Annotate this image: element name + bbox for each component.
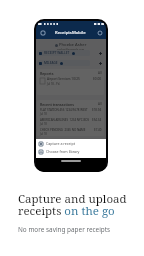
staticText: CHECK PENDING 2345 NO NAME — [40, 128, 86, 132]
staticText: All — [98, 102, 102, 106]
staticText: Capture and upload receipts on the go — [18, 191, 127, 218]
staticText: Choose from library — [46, 149, 80, 154]
button[interactable]: MILEAGE — [37, 60, 90, 66]
button[interactable]: Settings — [95, 28, 104, 37]
button[interactable]: FLAT STATION 456 1234/5678 WEST — [40, 108, 102, 117]
staticText: $7.40 — [94, 128, 102, 132]
button[interactable]: Capture a receipt — [39, 141, 103, 146]
staticText: $54.34 — [92, 118, 102, 122]
staticText: Capture a receipt — [46, 141, 75, 146]
staticText: Phoebe Asher — [59, 42, 87, 48]
staticText: RECEIPT WALLET — [44, 51, 70, 55]
staticText: $18.94 — [92, 108, 102, 112]
staticText: Recent transactions — [40, 102, 74, 107]
button[interactable]: CHECK PENDING 2345 NO NAME — [40, 128, 102, 137]
staticText: Airport Services 10/25 — [47, 77, 80, 81]
button[interactable]: Choose from library — [39, 149, 103, 154]
staticText: AMERICAN AIRLINES 1234 NYC-BOS — [40, 118, 90, 122]
button[interactable]: Add — [98, 61, 103, 66]
button[interactable]: AMERICAN AIRLINES 1234 NYC-BOS — [40, 118, 102, 127]
staticText: All — [98, 71, 102, 75]
staticText: ReceiptsMobile — [55, 30, 86, 36]
button[interactable]: Add — [98, 51, 103, 56]
staticText: $0.00 — [93, 77, 102, 81]
button[interactable]: Airport Services 10/25 — [40, 77, 102, 91]
staticText: Jul 18 — [40, 122, 47, 126]
staticText: Jul 18 - Pd. — [47, 82, 61, 86]
staticText: Jul 18 — [40, 132, 47, 136]
staticText: pasher@example.com — [57, 48, 85, 52]
staticText: Jul 18 — [40, 112, 47, 116]
staticText: Reports — [40, 71, 54, 76]
staticText: MILEAGE — [44, 61, 58, 65]
staticText: FLAT STATION 456 1234/5678 WEST — [40, 108, 88, 112]
staticText: No more saving paper receipts — [18, 225, 111, 234]
button[interactable]: Menu — [38, 28, 47, 37]
button[interactable]: RECEIPT WALLET — [37, 50, 90, 56]
